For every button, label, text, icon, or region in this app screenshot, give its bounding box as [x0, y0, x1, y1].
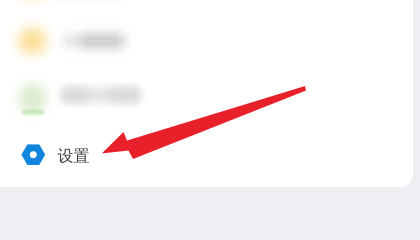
button[interactable]: 设置 [0, 127, 413, 183]
staticText: 设置 [57, 146, 89, 166]
